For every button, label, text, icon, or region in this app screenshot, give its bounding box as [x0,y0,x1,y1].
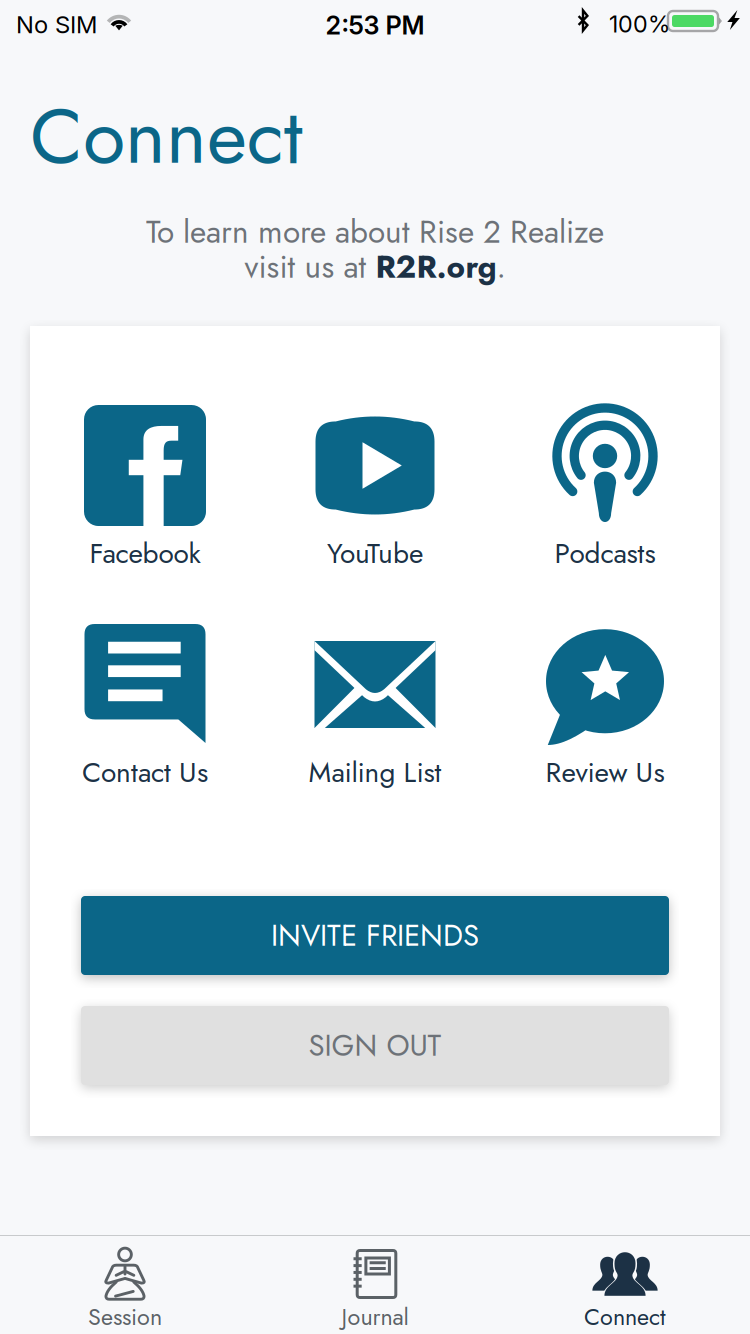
button[interactable]: Session [0,1236,250,1334]
staticText: Contact Us [82,752,208,792]
staticText: 2:53 PM [325,10,424,41]
button[interactable]: Connect [500,1236,750,1334]
button[interactable]: Mailing List [260,624,490,800]
button[interactable]: Review Us [490,624,720,800]
button[interactable]: INVITE FRIENDS [81,896,669,975]
staticText: To learn more about Rise 2 Realize [146,209,604,254]
button[interactable]: Contact Us [30,624,260,800]
staticText: visit us at [244,244,375,289]
button[interactable]: Facebook [30,405,260,581]
staticText: Podcasts [554,533,655,573]
button[interactable]: YouTube [260,405,490,581]
staticText: Journal [341,1300,408,1334]
staticText: Connect [584,1300,666,1334]
staticText: Connect [30,80,303,192]
staticText: Session [88,1300,162,1334]
staticText: YouTube [327,533,423,573]
staticText: Mailing List [308,752,441,792]
staticText: 100% [609,10,670,38]
button[interactable]: Podcasts [490,405,720,581]
button[interactable]: Journal [250,1236,500,1334]
button[interactable]: SIGN OUT [81,1006,669,1085]
staticText: Facebook [89,533,200,573]
staticText: No SIM [16,10,97,39]
staticText: SIGN OUT [308,1024,441,1067]
staticText: Review Us [545,752,664,792]
staticText: INVITE FRIENDS [271,914,479,957]
staticText: R2R.org [375,244,496,289]
staticText: . [496,244,505,289]
